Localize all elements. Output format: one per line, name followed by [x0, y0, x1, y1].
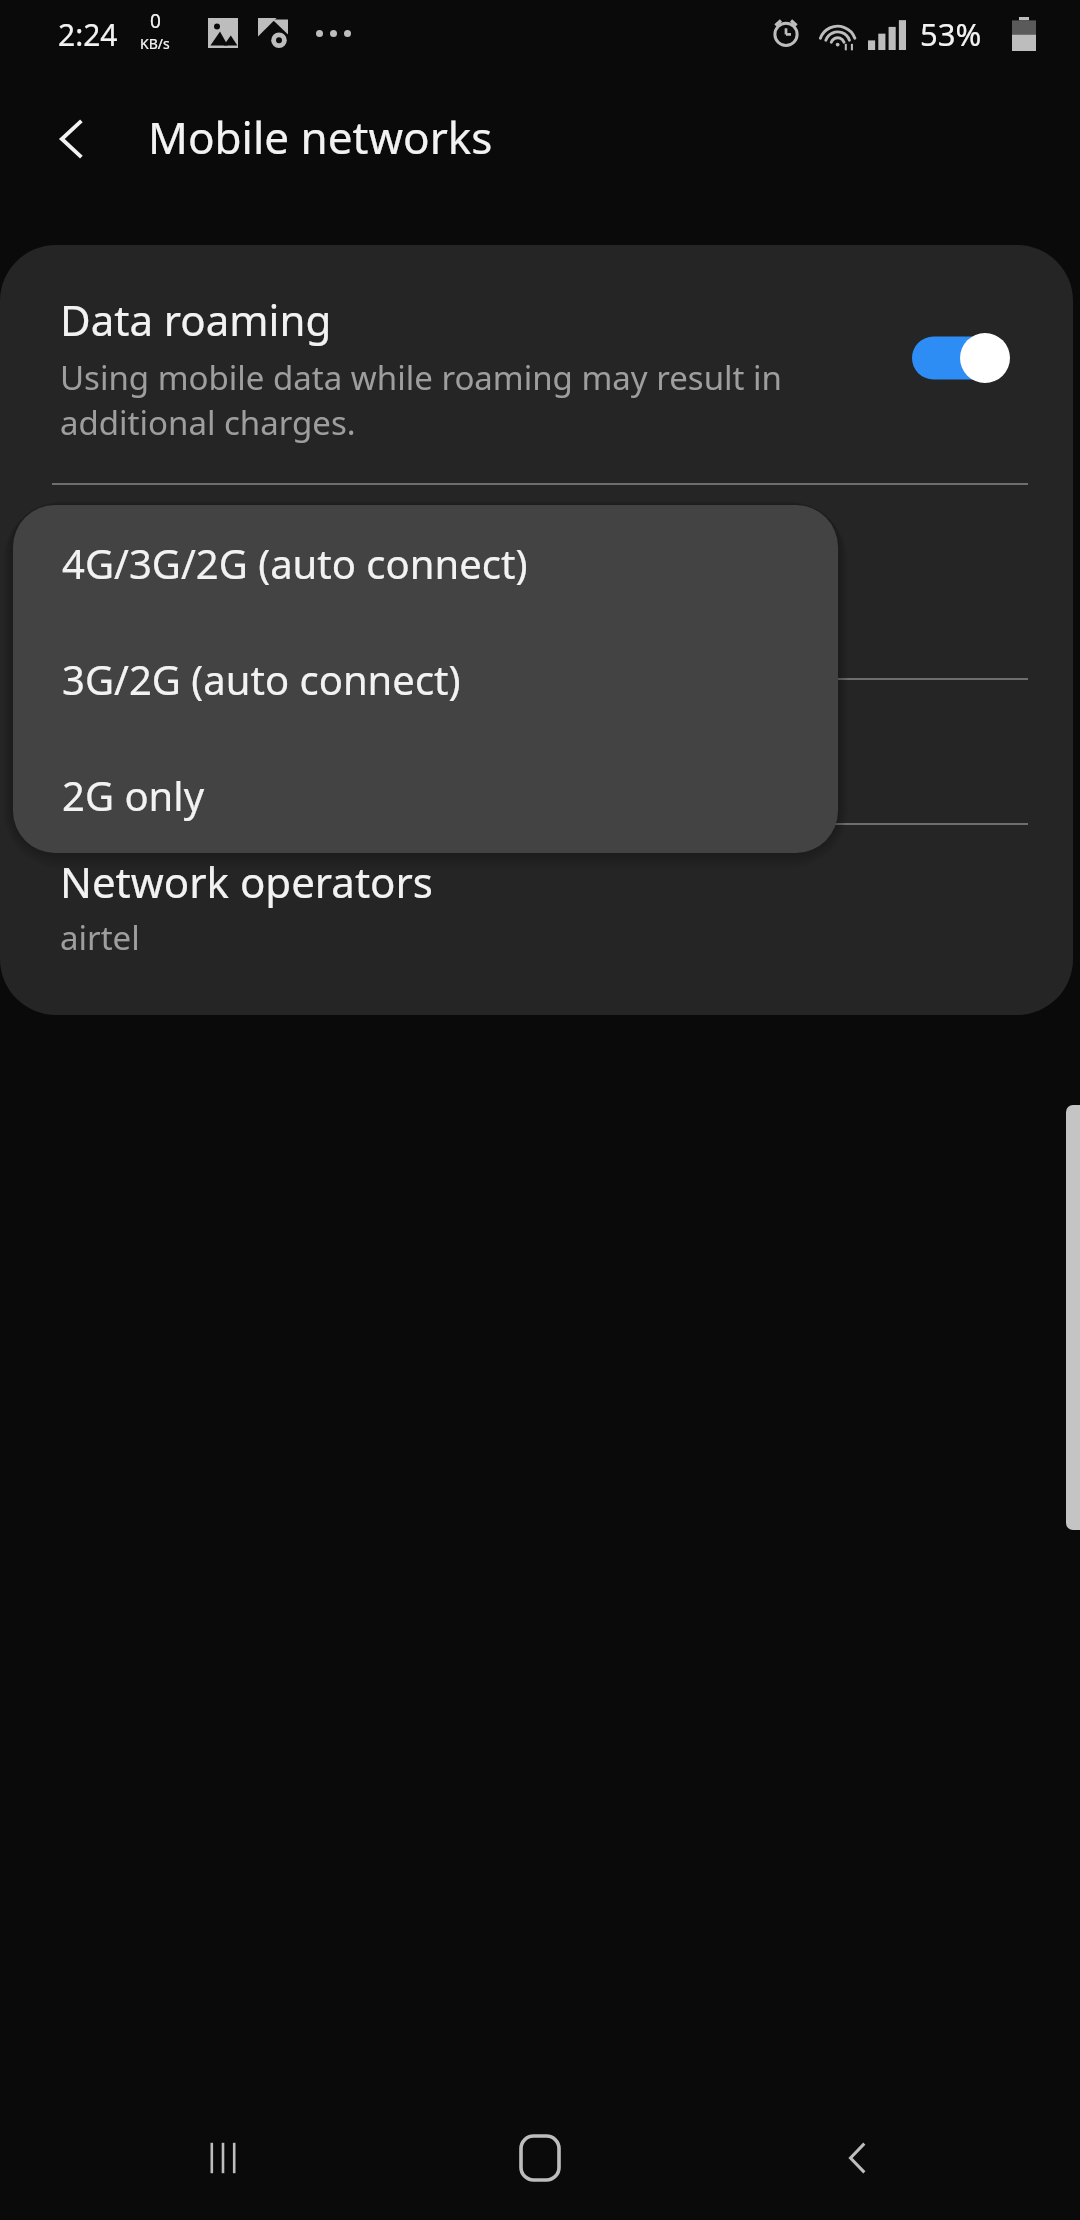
button[interactable]: Recents: [175, 2110, 271, 2206]
staticText: 53%: [920, 13, 982, 55]
staticText: KB/s: [140, 34, 170, 53]
staticText: Network mode: [60, 531, 355, 588]
button[interactable]: Data roaming toggle: [912, 333, 1010, 383]
button[interactable]: 4G/3G/2G (auto connect): [13, 505, 838, 621]
staticText: 3G/2G (auto connect): [62, 652, 461, 706]
staticText: 2G only: [62, 768, 205, 822]
staticText: Using mobile data while roaming may resu…: [60, 355, 782, 445]
button[interactable]: Back: [38, 104, 108, 174]
staticText: Network operators: [60, 853, 433, 910]
staticText: 0: [150, 8, 161, 34]
button[interactable]: 3G/2G (auto connect): [13, 621, 838, 737]
staticText: airtel: [60, 915, 140, 960]
button[interactable]: Network mode: [0, 485, 1073, 680]
button[interactable]: Back: [810, 2110, 906, 2206]
staticText: Mobile networks: [148, 107, 493, 167]
button[interactable]: 2G only: [13, 737, 838, 853]
button[interactable]: Home: [492, 2110, 588, 2206]
staticText: Data roaming: [60, 291, 332, 348]
staticText: 4G/3G/2G (auto connect): [62, 536, 528, 590]
button[interactable]: Data roaming: [0, 245, 1073, 483]
staticText: 2:24: [58, 14, 118, 55]
button[interactable]: Access Point Names: [0, 680, 1073, 823]
button[interactable]: Network operators: [0, 825, 1073, 1015]
